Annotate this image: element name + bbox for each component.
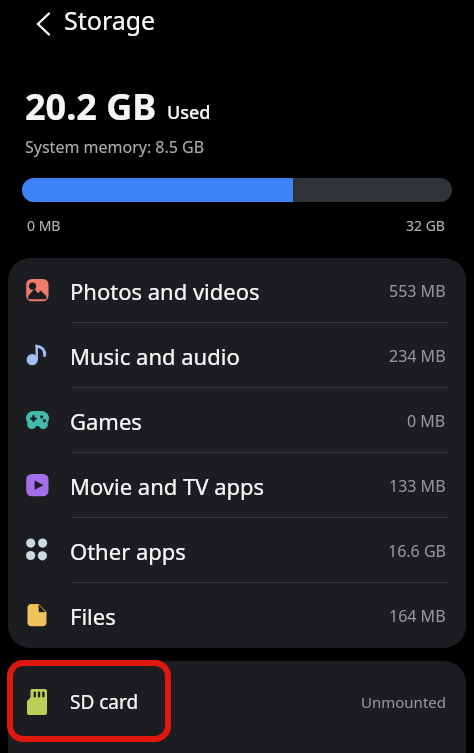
button[interactable]: Games — [8, 388, 466, 453]
staticText: 20.2 GB — [25, 82, 157, 131]
staticText: Photos and videos — [70, 276, 260, 306]
staticText: Files — [70, 601, 116, 631]
staticText: 234 MB — [389, 345, 446, 367]
staticText: 0 MB — [27, 216, 61, 235]
button[interactable]: Music and audio — [8, 323, 466, 388]
staticText: Used — [167, 100, 211, 125]
staticText: 553 MB — [389, 280, 446, 302]
button[interactable]: Other apps — [8, 518, 466, 583]
button[interactable] — [24, 0, 64, 48]
staticText: Music and audio — [70, 341, 240, 371]
button[interactable]: SD card — [8, 661, 466, 743]
staticText: System memory: 8.5 GB — [25, 136, 205, 158]
staticText: 0 MB — [407, 410, 446, 432]
staticText: Unmounted — [361, 692, 446, 712]
staticText: Other apps — [70, 536, 186, 566]
staticText: 133 MB — [389, 475, 446, 497]
button[interactable]: Photos and videos — [8, 258, 466, 323]
button[interactable]: Movie and TV apps — [8, 453, 466, 518]
staticText: Games — [70, 406, 142, 436]
staticText: 164 MB — [389, 605, 446, 627]
staticText: SD card — [70, 689, 139, 715]
staticText: Storage — [64, 3, 156, 37]
staticText: 16.6 GB — [388, 540, 446, 562]
staticText: Movie and TV apps — [70, 471, 265, 501]
button[interactable]: Files — [8, 583, 466, 648]
staticText: 32 GB — [406, 216, 445, 235]
